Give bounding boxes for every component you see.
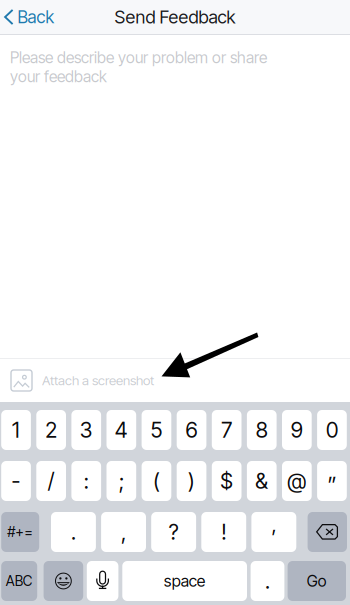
- button[interactable]: ): [177, 461, 206, 501]
- staticText: /: [48, 468, 55, 494]
- staticText: #+=: [7, 523, 33, 540]
- staticText: Attach a screenshot: [42, 372, 154, 388]
- button[interactable]: 2: [36, 410, 66, 450]
- staticText: space: [164, 571, 206, 591]
- button[interactable]: .: [51, 512, 96, 552]
- staticText: $: [220, 468, 233, 494]
- button[interactable]: Back: [0, 0, 63, 34]
- staticText: ’: [271, 525, 276, 549]
- button[interactable]: 1: [1, 410, 31, 450]
- staticText: .: [71, 519, 76, 545]
- staticText: 1: [12, 417, 20, 443]
- button[interactable]: space: [122, 561, 247, 601]
- staticText: 6: [185, 417, 197, 443]
- staticText: @: [287, 468, 306, 494]
- staticText: Please describe your problem or share yo…: [10, 48, 267, 86]
- button[interactable]: !: [201, 512, 246, 552]
- button[interactable]: $: [212, 461, 241, 501]
- staticText: 7: [221, 417, 232, 443]
- button[interactable]: 3: [71, 410, 101, 450]
- staticText: Go: [307, 571, 327, 590]
- button[interactable]: -: [1, 461, 31, 501]
- button[interactable]: &: [247, 461, 277, 501]
- button[interactable]: ABC: [1, 561, 37, 601]
- staticText: ”: [327, 472, 336, 498]
- staticText: ;: [119, 468, 124, 494]
- staticText: 5: [150, 417, 162, 443]
- staticText: .: [265, 568, 270, 594]
- staticText: 3: [80, 417, 93, 443]
- button[interactable]: Dictate: [87, 561, 118, 601]
- button[interactable]: ?: [151, 512, 196, 552]
- button[interactable]: Emoji keyboard: [44, 561, 83, 601]
- staticText: -: [11, 468, 20, 494]
- staticText: 9: [291, 417, 303, 443]
- button[interactable]: ’: [251, 512, 296, 552]
- button[interactable]: ”: [317, 461, 347, 501]
- staticText: 8: [256, 417, 268, 443]
- staticText: :: [84, 468, 89, 494]
- staticText: ): [188, 468, 195, 494]
- button[interactable]: 0: [317, 410, 347, 450]
- staticText: &: [255, 468, 268, 494]
- button[interactable]: :: [71, 461, 101, 501]
- button[interactable]: 7: [212, 410, 241, 450]
- staticText: 2: [45, 417, 57, 443]
- button[interactable]: Attach a screenshot: [0, 359, 350, 402]
- button[interactable]: ,: [101, 512, 146, 552]
- staticText: ,: [121, 519, 126, 545]
- button[interactable]: /: [36, 461, 66, 501]
- staticText: ?: [169, 519, 179, 545]
- staticText: Send Feedback: [114, 6, 235, 28]
- button[interactable]: ;: [106, 461, 136, 501]
- button[interactable]: (: [142, 461, 171, 501]
- button[interactable]: @: [282, 461, 312, 501]
- staticText: 4: [115, 417, 128, 443]
- button[interactable]: .: [251, 561, 284, 601]
- button[interactable]: 5: [142, 410, 171, 450]
- staticText: (: [153, 468, 160, 494]
- button[interactable]: 9: [282, 410, 312, 450]
- button[interactable]: Go: [288, 561, 346, 601]
- staticText: Back: [18, 6, 55, 27]
- button[interactable]: 8: [247, 410, 277, 450]
- button[interactable]: #+=: [1, 512, 39, 552]
- staticText: 0: [326, 417, 338, 443]
- staticText: !: [221, 519, 226, 545]
- button[interactable]: Delete: [308, 512, 347, 552]
- button[interactable]: 6: [177, 410, 206, 450]
- staticText: ABC: [6, 572, 33, 589]
- button[interactable]: 4: [106, 410, 136, 450]
